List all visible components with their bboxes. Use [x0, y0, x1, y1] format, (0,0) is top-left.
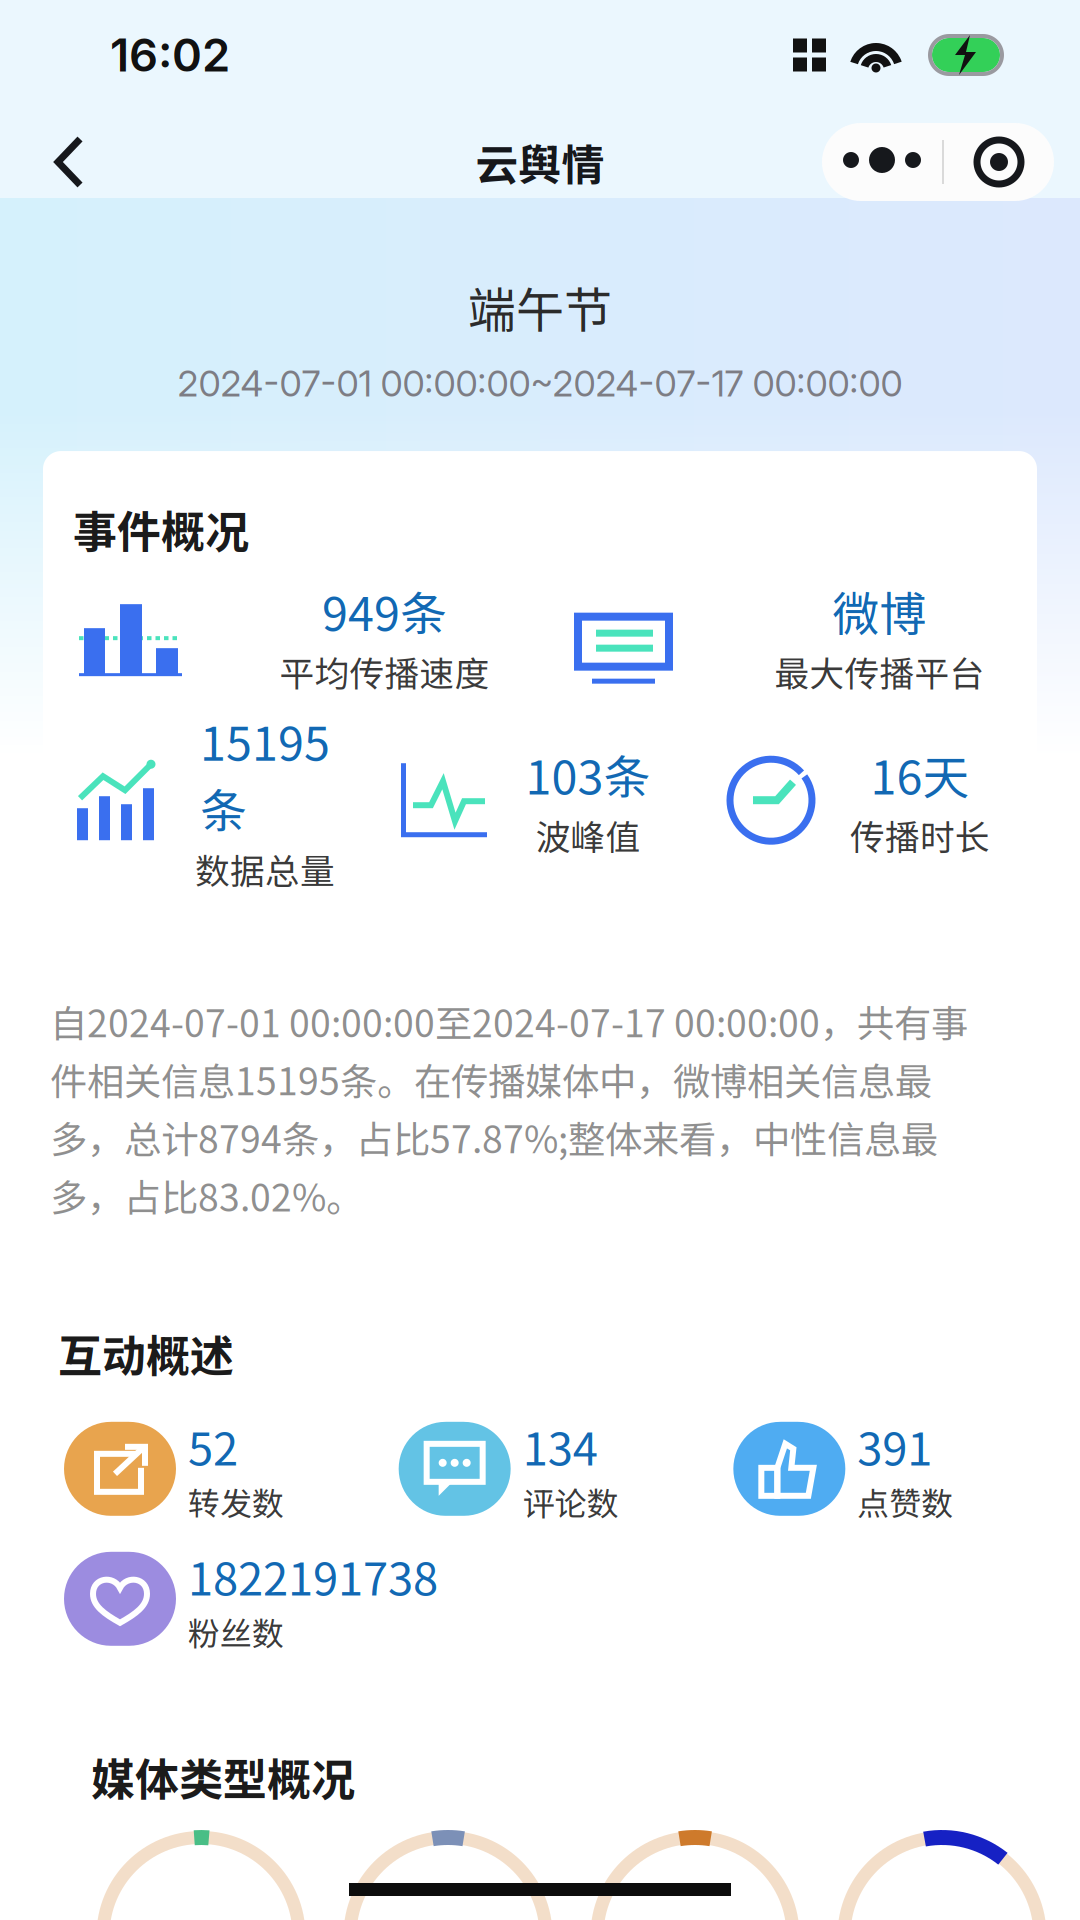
staticText: 平媒 2.18% [600, 1909, 790, 1920]
staticText: 自2024-07-01 00:00:00至2024-07-17 00:00:00… [50, 994, 968, 1222]
button[interactable]: 391 [733, 1413, 1068, 1525]
button[interactable]: 52 [64, 1413, 399, 1525]
staticText: 云舆情 [475, 131, 604, 193]
staticText: 媒体类型概况 [91, 1745, 355, 1808]
staticText: 15195条 [200, 706, 330, 842]
staticText: 16天 [870, 740, 969, 808]
button[interactable]: 134 [399, 1413, 733, 1525]
staticText: 网媒 1.91% [353, 1909, 543, 1920]
staticText: 数据总量 [195, 844, 335, 894]
staticText: 评论数 [523, 1478, 619, 1525]
staticText: 论坛 0.31% [106, 1909, 296, 1920]
staticText: 点赞数 [857, 1478, 953, 1525]
staticText: 平均传播速度 [279, 646, 489, 696]
staticText: 互动概述 [58, 1321, 234, 1385]
staticText: 传播时长 [850, 810, 990, 860]
staticText: 微博 [832, 577, 926, 644]
button[interactable]: More [822, 123, 942, 201]
staticText: 16:02 [110, 28, 230, 82]
staticText: 949条 [322, 577, 447, 644]
staticText: 波峰值 [535, 810, 640, 860]
staticText: 事件概况 [73, 497, 249, 561]
staticText: 最大传播平台 [774, 646, 984, 696]
button[interactable]: Close [944, 123, 1054, 201]
button[interactable]: Back [24, 119, 114, 205]
staticText: 391 [857, 1413, 932, 1478]
staticText: 2024-07-01 00:00:00~2024-07-17 00:00:00 [177, 361, 902, 405]
staticText: 134 [523, 1413, 598, 1478]
staticText: 1822191738 [188, 1543, 438, 1608]
staticText: 52 [188, 1413, 238, 1478]
button[interactable]: 1822191738 [64, 1543, 1080, 1655]
staticText: 移媒 10.2% [847, 1909, 1037, 1920]
staticText: 端午节 [468, 272, 612, 341]
staticText: 转发数 [188, 1478, 284, 1525]
staticText: 103条 [525, 740, 650, 808]
staticText: 粉丝数 [188, 1608, 284, 1655]
